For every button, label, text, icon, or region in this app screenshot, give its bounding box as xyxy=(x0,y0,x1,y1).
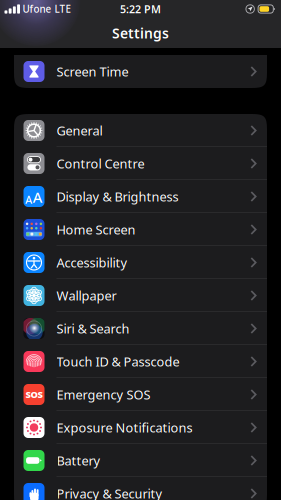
staticText: Emergency SOS xyxy=(56,386,150,403)
staticText: Home Screen xyxy=(56,221,135,238)
button[interactable]: Touch ID & Passcode xyxy=(14,345,267,378)
staticText: SOS xyxy=(25,388,42,401)
button[interactable]: SOS xyxy=(14,378,267,411)
staticText: LTE xyxy=(54,2,70,15)
staticText: Accessibility xyxy=(56,254,127,271)
staticText: Battery xyxy=(56,452,100,469)
button[interactable]: Wallpaper xyxy=(14,279,267,312)
button[interactable]: Accessibility xyxy=(14,246,267,279)
staticText: Display & Brightness xyxy=(56,188,178,205)
staticText: Touch ID & Passcode xyxy=(56,353,179,370)
staticText: Control Centre xyxy=(56,155,144,172)
button[interactable]: Screen Time xyxy=(14,55,267,88)
button[interactable]: Battery xyxy=(14,444,267,477)
button[interactable]: Siri & Search xyxy=(14,312,267,345)
button[interactable]: A xyxy=(14,180,267,213)
button[interactable]: Exposure Notifications xyxy=(14,411,267,444)
staticText: Siri & Search xyxy=(56,320,129,337)
staticText: Settings xyxy=(112,24,169,42)
staticText: Screen Time xyxy=(56,63,128,80)
staticText: Privacy & Security xyxy=(56,485,162,500)
staticText: 5:22 PM xyxy=(120,2,161,16)
staticText: A xyxy=(33,187,43,207)
button[interactable]: General xyxy=(14,114,267,147)
staticText: Exposure Notifications xyxy=(56,419,192,436)
button[interactable]: Home Screen xyxy=(14,213,267,246)
button[interactable]: Privacy & Security xyxy=(14,477,267,500)
staticText: A xyxy=(25,193,32,207)
staticText: Ufone xyxy=(22,2,51,15)
staticText: Wallpaper xyxy=(56,287,116,304)
staticText: General xyxy=(56,122,102,139)
button[interactable]: Control Centre xyxy=(14,147,267,180)
